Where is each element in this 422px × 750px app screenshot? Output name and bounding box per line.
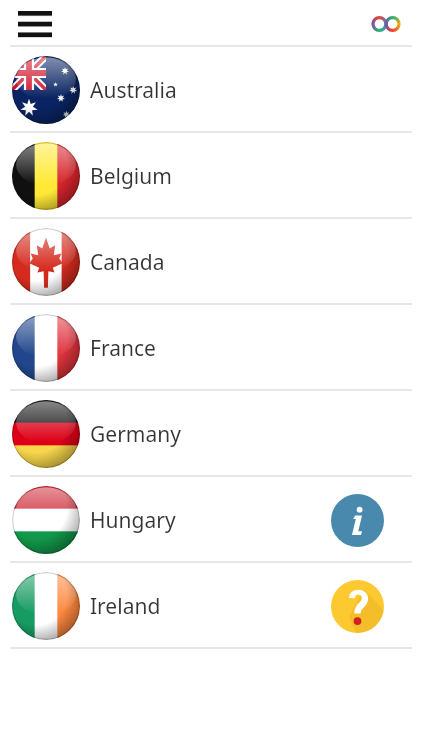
button[interactable]: Ireland xyxy=(0,563,422,649)
button[interactable]: Hungary xyxy=(0,477,422,563)
button[interactable]: Germany xyxy=(0,391,422,477)
button[interactable]: Belgium xyxy=(0,133,422,219)
button[interactable]: Canada xyxy=(0,219,422,305)
staticText: Australia xyxy=(90,76,177,105)
button[interactable]: Open navigation menu xyxy=(12,4,58,44)
staticText: France xyxy=(90,334,156,363)
button[interactable]: Australia xyxy=(0,47,422,133)
staticText: Germany xyxy=(90,420,181,449)
button[interactable]: Help xyxy=(331,580,384,633)
staticText: Ireland xyxy=(90,592,161,621)
staticText: Canada xyxy=(90,248,165,277)
button[interactable]: Information xyxy=(331,494,384,547)
staticText: Hungary xyxy=(90,506,176,535)
button[interactable]: France xyxy=(0,305,422,391)
staticText: Belgium xyxy=(90,162,172,191)
button[interactable]: App logo xyxy=(364,6,408,42)
